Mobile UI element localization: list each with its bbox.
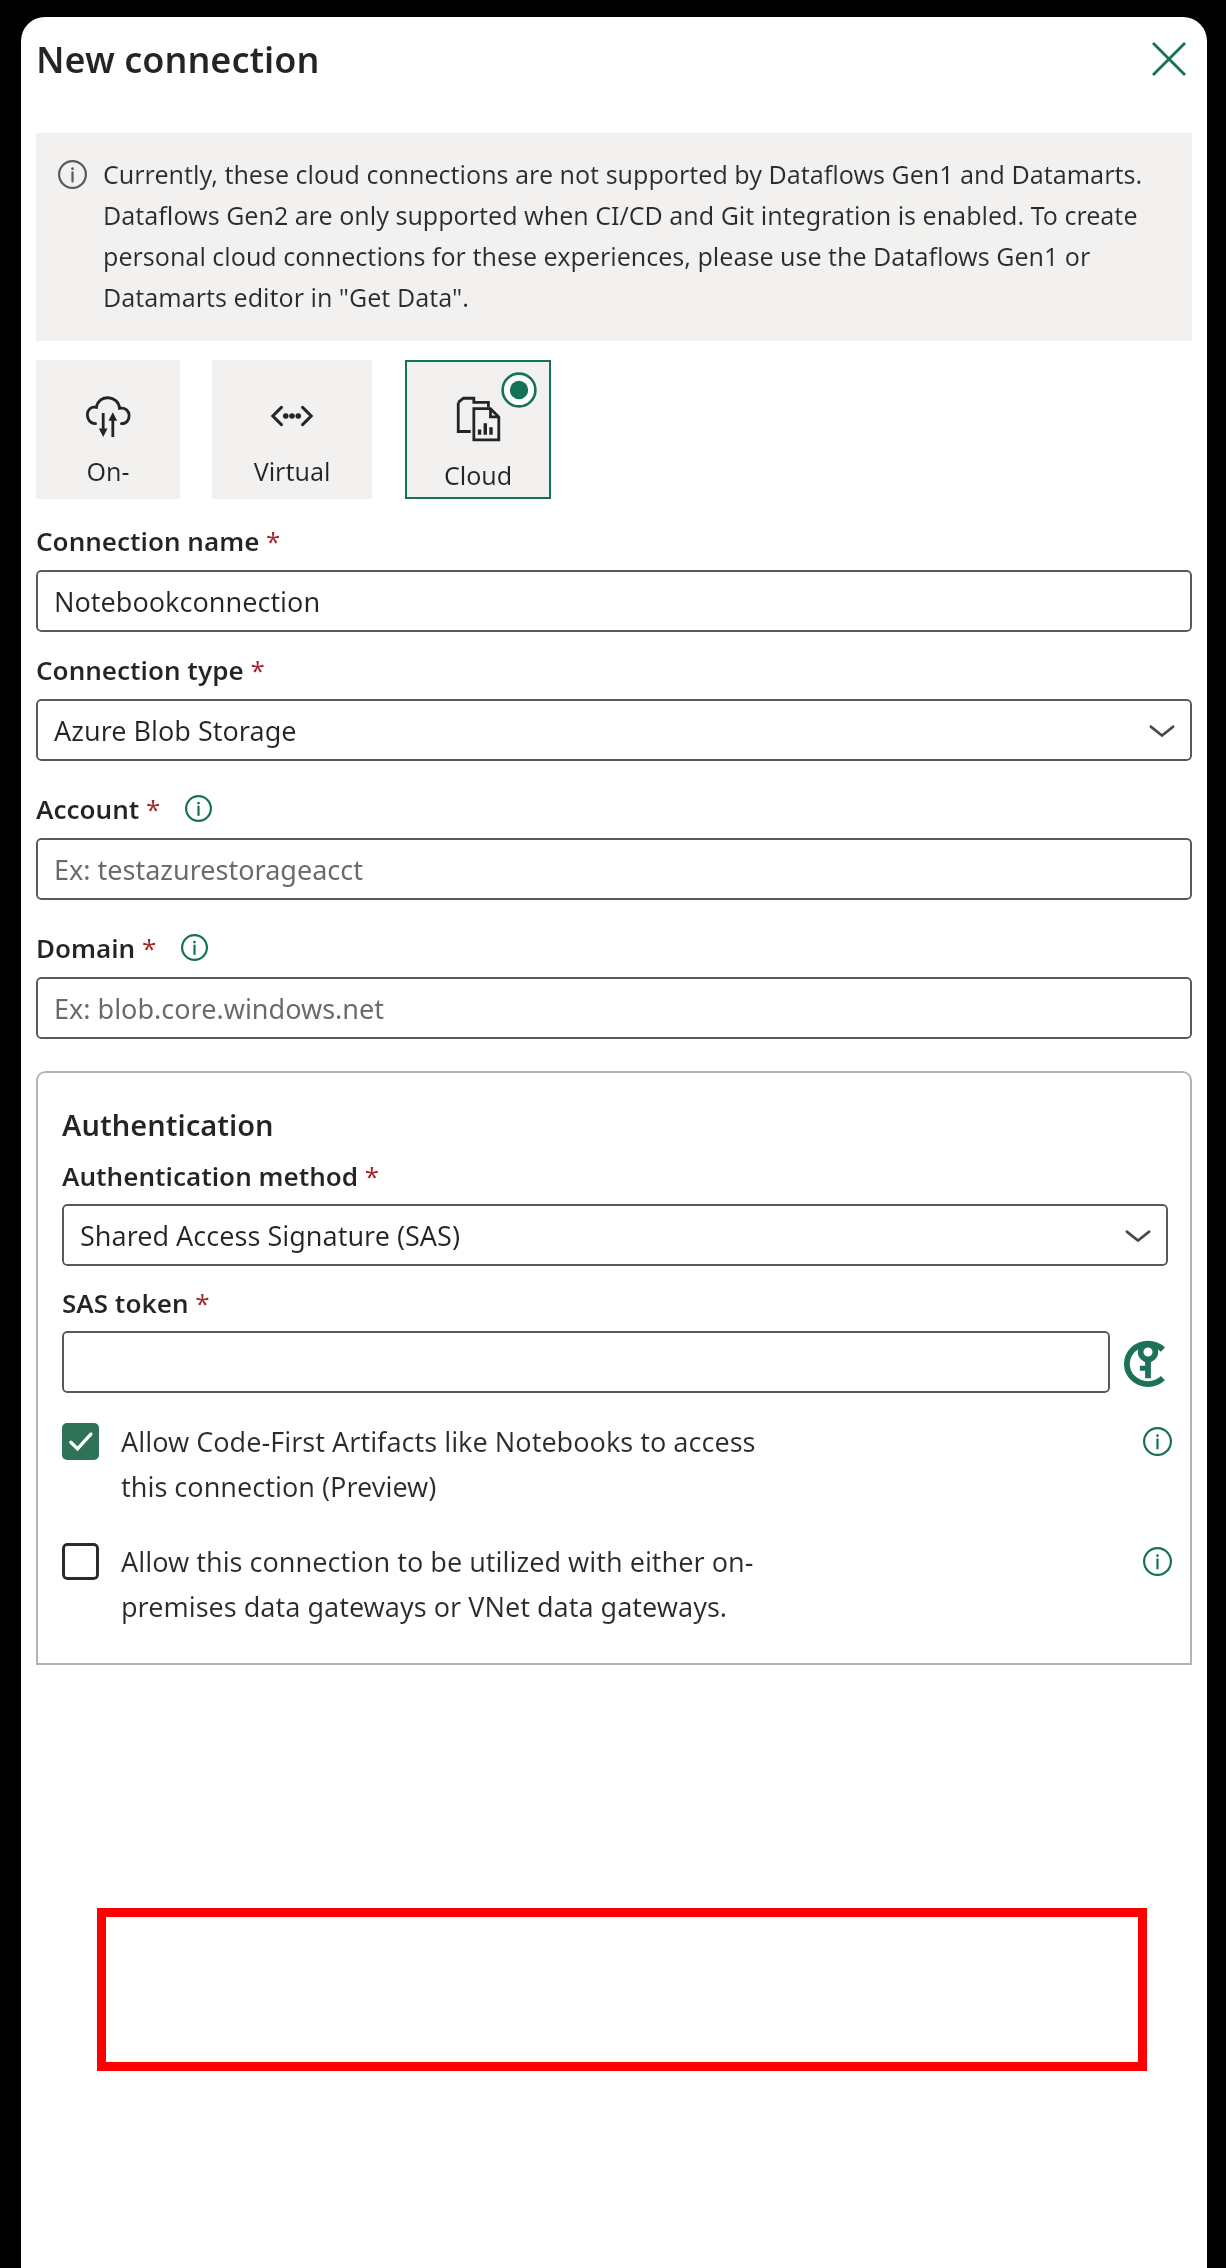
- button[interactable]: Virtual network: [212, 360, 372, 499]
- staticText: Connection name *: [36, 523, 281, 558]
- staticText: Authentication: [62, 1105, 274, 1144]
- staticText: Notebookconnection: [54, 583, 321, 620]
- staticText: Allow Code-First Artifacts like Notebook…: [121, 1423, 1143, 1505]
- staticText: Ex: testazurestorageacct: [54, 851, 363, 888]
- button[interactable]: [62, 1331, 1110, 1393]
- staticText: Shared Access Signature (SAS): [80, 1217, 461, 1254]
- button[interactable]: Azure Blob Storage: [36, 699, 1192, 761]
- button[interactable]: Notebookconnection: [36, 570, 1192, 632]
- button[interactable]: Domain info: [181, 934, 208, 961]
- staticText: Authentication method *: [62, 1158, 380, 1193]
- staticText: Ex: blob.core.windows.net: [54, 990, 384, 1027]
- button[interactable]: Close: [1139, 29, 1199, 89]
- button[interactable]: Ex: blob.core.windows.net: [36, 977, 1192, 1039]
- staticText: Cloud: [409, 458, 547, 492]
- staticText: Allow this connection to be utilized wit…: [121, 1543, 1143, 1625]
- staticText: New connection: [36, 35, 320, 84]
- button[interactable]: On-premises: [36, 360, 180, 499]
- button[interactable]: Cloud: [405, 360, 551, 499]
- button[interactable]: Shared Access Signature (SAS): [62, 1204, 1168, 1266]
- button[interactable]: Account info: [185, 795, 212, 822]
- staticText: Virtual network: [216, 454, 368, 499]
- button[interactable]: Allow this connection to be utilized wit…: [62, 1543, 1172, 1625]
- button[interactable]: Key credentials: [1124, 1338, 1172, 1386]
- staticText: SAS token *: [62, 1285, 210, 1320]
- staticText: Azure Blob Storage: [54, 712, 297, 749]
- staticText: Domain *: [36, 930, 157, 965]
- staticText: Account *: [36, 791, 161, 826]
- staticText: Connection type *: [36, 652, 265, 687]
- staticText: On-premises: [40, 454, 176, 499]
- staticText: Currently, these cloud connections are n…: [103, 157, 1174, 315]
- button[interactable]: Allow Code-First Artifacts like Notebook…: [62, 1423, 1172, 1505]
- button[interactable]: Ex: testazurestorageacct: [36, 838, 1192, 900]
